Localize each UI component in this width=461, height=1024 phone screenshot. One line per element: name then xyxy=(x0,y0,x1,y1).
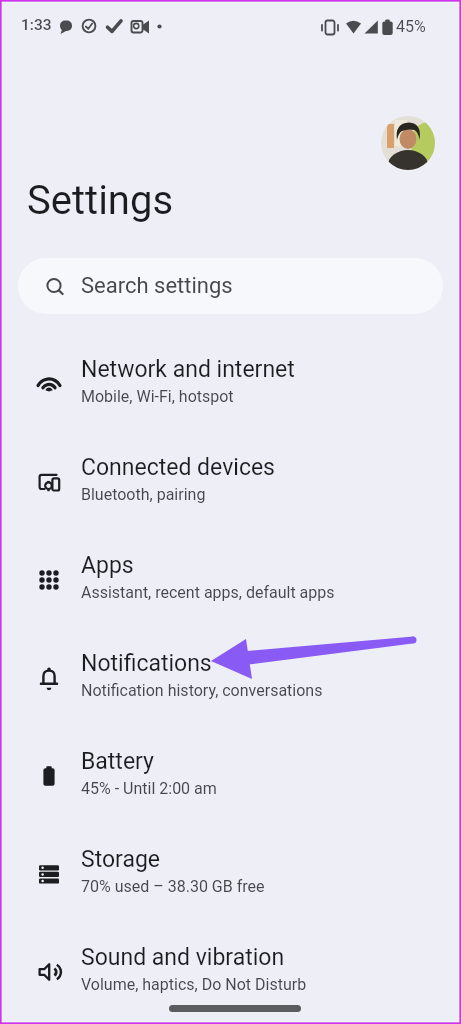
staticText: Notification history, conversations xyxy=(81,681,323,700)
staticText: 1:33 xyxy=(21,16,52,34)
staticText: Sound and vibration xyxy=(81,944,285,971)
staticText: 45% xyxy=(396,17,426,36)
staticText: Assistant, recent apps, default apps xyxy=(81,583,335,602)
staticText: Network and internet xyxy=(81,356,295,383)
staticText: Volume, haptics, Do Not Disturb xyxy=(81,975,307,994)
staticText: Apps xyxy=(81,552,134,579)
button[interactable]: Storage xyxy=(0,825,461,923)
staticText: Mobile, Wi-Fi, hotspot xyxy=(81,387,234,406)
staticText: Settings xyxy=(27,177,174,224)
staticText: Notifications xyxy=(81,650,212,677)
button[interactable]: Connected devices xyxy=(0,433,461,531)
staticText: 70% used – 38.30 GB free xyxy=(81,877,265,896)
button[interactable]: Apps xyxy=(0,531,461,629)
button[interactable] xyxy=(381,116,435,170)
staticText: Search settings xyxy=(81,273,233,299)
button[interactable]: Notifications xyxy=(0,629,461,727)
staticText: Battery xyxy=(81,748,154,775)
button[interactable]: Search settings xyxy=(18,258,443,314)
staticText: 45% - Until 2:00 am xyxy=(81,779,217,798)
button[interactable]: Network and internet xyxy=(0,335,461,433)
button[interactable]: Sound and vibration xyxy=(0,923,461,1021)
staticText: Connected devices xyxy=(81,454,275,481)
staticText: Storage xyxy=(81,846,161,873)
button[interactable]: Battery xyxy=(0,727,461,825)
staticText: Bluetooth, pairing xyxy=(81,485,206,504)
